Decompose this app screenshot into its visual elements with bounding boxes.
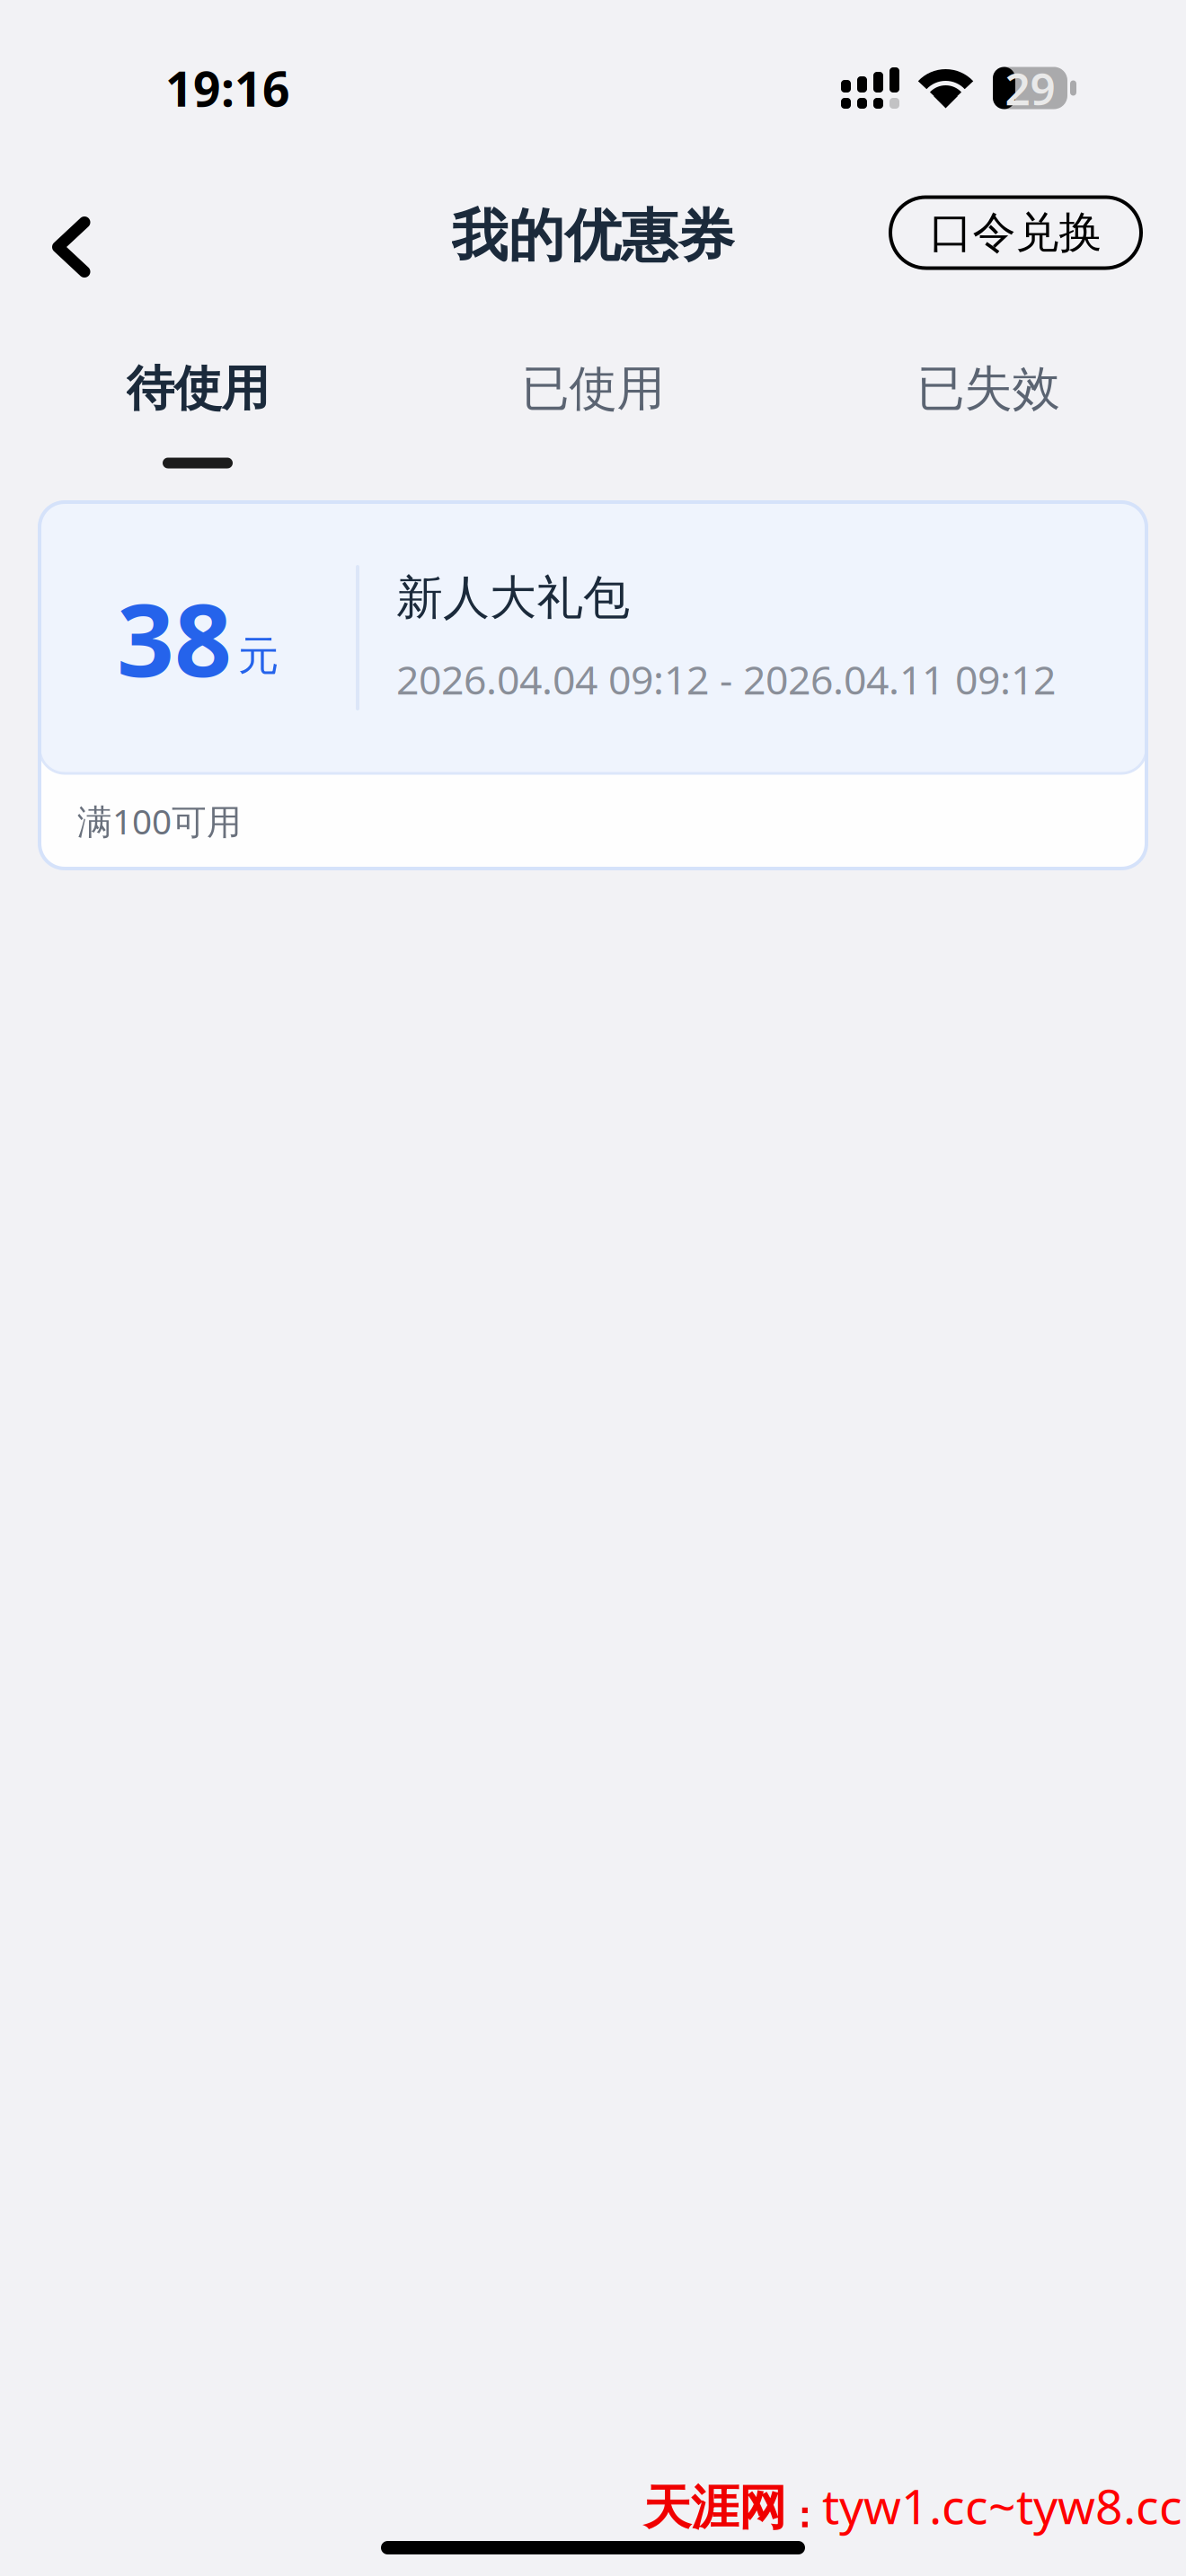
staticText: 待使用 bbox=[126, 359, 269, 418]
button[interactable]: 待使用 bbox=[0, 296, 395, 502]
button[interactable]: 已失效 bbox=[791, 296, 1186, 502]
staticText: 已使用 bbox=[522, 359, 664, 418]
staticText: 29 bbox=[1005, 59, 1055, 117]
staticText: 新人大礼包 bbox=[396, 569, 630, 627]
staticText: 元 bbox=[238, 631, 279, 681]
staticText: 满100可用 bbox=[77, 798, 242, 844]
staticText: ： bbox=[786, 2493, 822, 2537]
button[interactable]: 口令兑换 bbox=[890, 197, 1141, 275]
button[interactable]: 返回 bbox=[27, 179, 122, 294]
staticText: tyw1.cc~tyw8.cc bbox=[822, 2474, 1182, 2537]
staticText: 38 bbox=[117, 571, 232, 704]
staticText: 天涯网 bbox=[643, 2479, 786, 2537]
staticText: 已失效 bbox=[917, 359, 1060, 418]
button[interactable]: 已使用 bbox=[395, 296, 791, 502]
staticText: 口令兑换 bbox=[929, 206, 1102, 259]
staticText: 19:16 bbox=[165, 56, 290, 120]
staticText: 我的优惠券 bbox=[451, 202, 735, 271]
staticText: 2026.04.04 09:12 - 2026.04.11 09:12 bbox=[396, 652, 1056, 706]
button[interactable]: 38 bbox=[0, 502, 1186, 869]
